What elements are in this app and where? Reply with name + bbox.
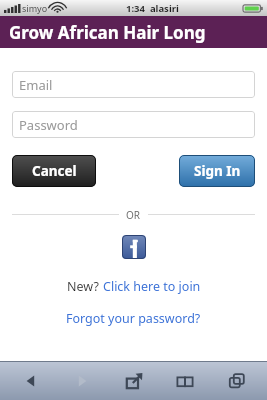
- staticText: Click here to join: [103, 278, 201, 295]
- button[interactable]: Cancel: [12, 155, 96, 187]
- staticText: Password: [19, 116, 78, 134]
- button[interactable]: Email: [12, 71, 255, 98]
- button[interactable]: Click here to join: [103, 278, 201, 295]
- button[interactable]: Share: [113, 363, 155, 399]
- button[interactable]: Forgot your password?: [66, 310, 201, 327]
- button[interactable]: Forward: [61, 363, 103, 399]
- button[interactable]: Sign in with Facebook: [122, 235, 146, 259]
- button[interactable]: Password: [12, 111, 255, 138]
- staticText: New?: [67, 278, 103, 295]
- button[interactable]: Sign In: [179, 155, 255, 187]
- button[interactable]: Bookmarks: [164, 363, 206, 399]
- button[interactable]: Back: [10, 363, 52, 399]
- staticText: 1:34 alasiri: [126, 2, 179, 15]
- button[interactable]: Tabs: [216, 363, 258, 399]
- staticText: Forgot your password?: [66, 310, 201, 327]
- staticText: simyo: [22, 2, 48, 14]
- staticText: Grow African Hair Long: [9, 21, 206, 44]
- staticText: Email: [19, 76, 53, 94]
- staticText: Cancel: [32, 162, 77, 180]
- staticText: OR: [126, 208, 141, 221]
- staticText: Sign In: [194, 162, 241, 180]
